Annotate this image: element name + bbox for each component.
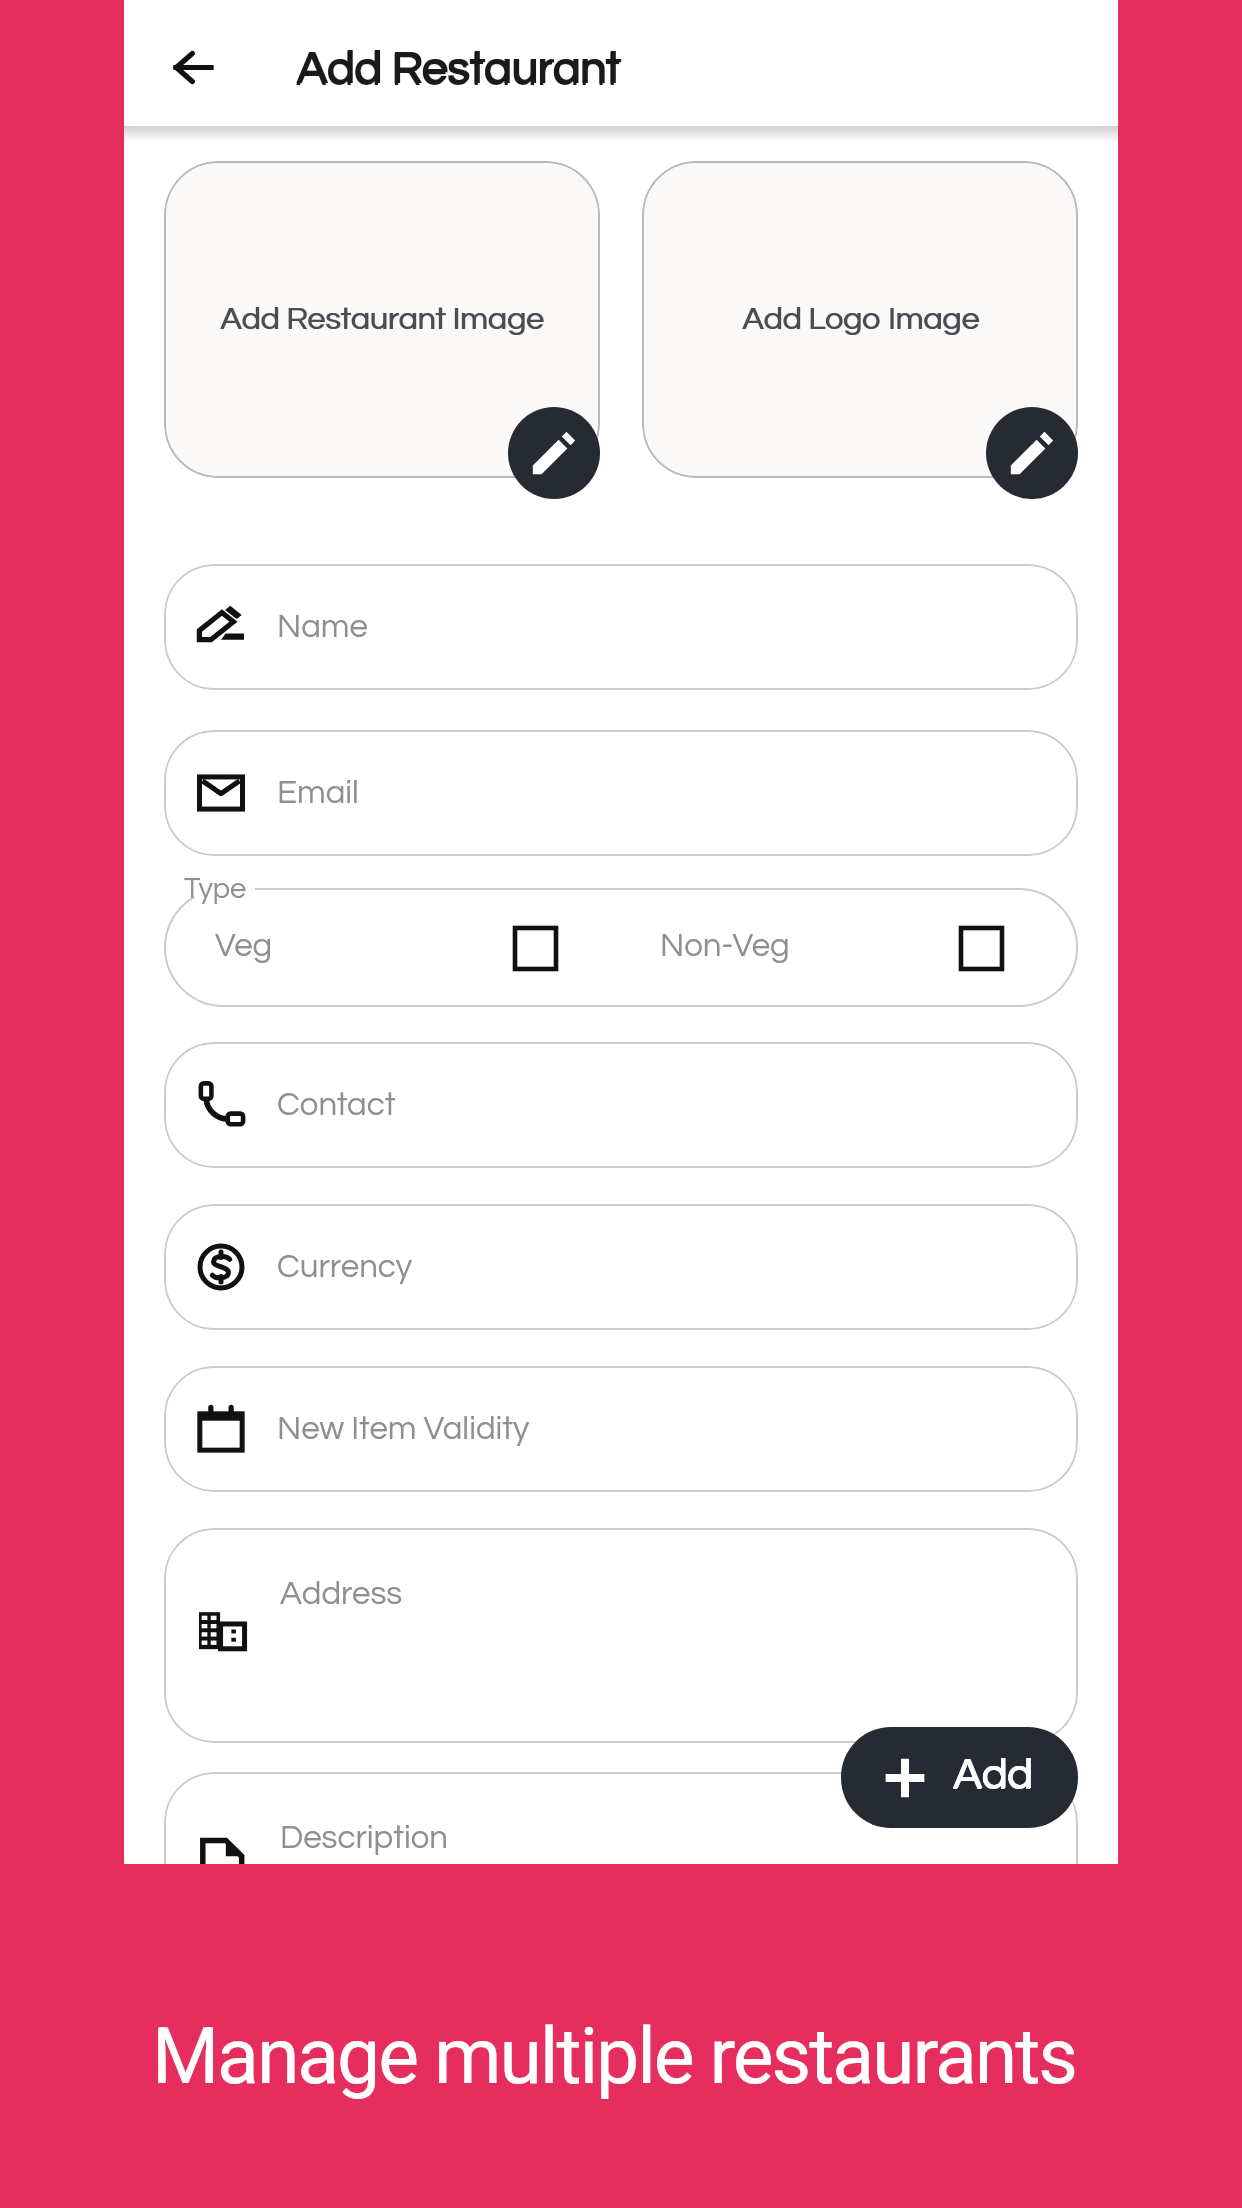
staticText: Type (184, 874, 247, 904)
staticText: Currency (277, 1250, 413, 1284)
staticText: Email (277, 776, 359, 810)
staticText: Description (280, 1821, 449, 1855)
staticText: Contact (277, 1088, 396, 1122)
button[interactable]: Add Logo Image (642, 161, 1078, 478)
staticText: Add Logo Image (742, 303, 979, 336)
button[interactable]: Email (164, 730, 1078, 856)
staticText: Add Logo Image (743, 303, 980, 336)
button[interactable]: Add (841, 1727, 1078, 1828)
staticText: Veg (215, 929, 273, 963)
staticText: Address (280, 1577, 403, 1611)
staticText: Non-Veg (660, 929, 790, 963)
staticText: Add Restaurant Image (220, 303, 544, 336)
staticText: Add Restaurant (298, 45, 623, 92)
button[interactable]: Name (164, 564, 1078, 690)
button[interactable]: Address (164, 1528, 1078, 1743)
button[interactable]: Add Restaurant Image (164, 161, 600, 478)
button[interactable]: Contact (164, 1042, 1078, 1168)
staticText: Name (277, 610, 368, 644)
button[interactable]: Veg (504, 917, 566, 979)
button[interactable]: Currency (164, 1204, 1078, 1330)
button[interactable]: Back (154, 28, 232, 106)
button[interactable]: Edit image (986, 407, 1078, 499)
staticText: Add Restaurant (296, 47, 621, 94)
staticText: Add Restaurant (296, 45, 621, 92)
staticText: Add Restaurant Image (221, 303, 545, 336)
staticText: New Item Validity (277, 1412, 530, 1446)
staticText: Add (954, 1753, 1034, 1797)
button[interactable]: Edit image (508, 407, 600, 499)
button[interactable]: Description (164, 1772, 1078, 1864)
staticText: Add (953, 1753, 1033, 1797)
staticText: Manage multiple restaurants (152, 2012, 1076, 2102)
staticText: Add (953, 1754, 1033, 1798)
button[interactable]: New Item Validity (164, 1366, 1078, 1492)
button[interactable]: Non-Veg (950, 917, 1012, 979)
